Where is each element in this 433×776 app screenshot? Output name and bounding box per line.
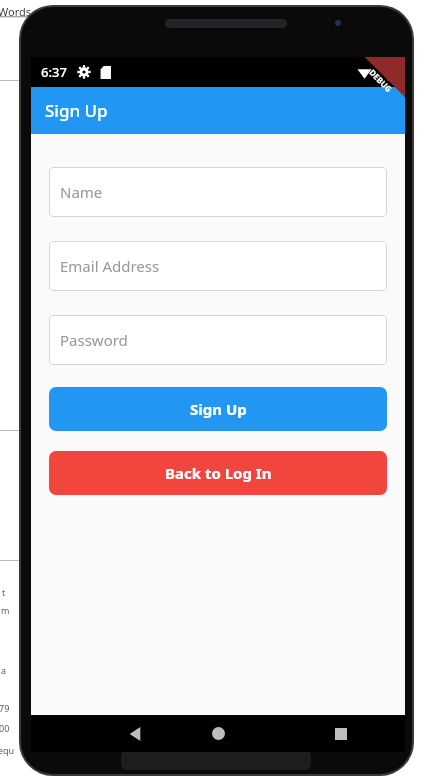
button[interactable]: Name — [49, 167, 387, 217]
staticText: Words — [0, 4, 32, 19]
staticText: a — [1, 664, 7, 676]
staticText: 00 — [0, 722, 10, 734]
button[interactable]: Home — [188, 715, 248, 752]
staticText: Back to Log In — [165, 463, 272, 483]
staticText: DEBUG — [367, 67, 395, 94]
staticText: Sign Up — [190, 399, 247, 419]
staticText: m — [1, 604, 10, 616]
button[interactable]: Back — [105, 715, 165, 752]
staticText: Password — [60, 330, 128, 350]
button[interactable]: Email Address — [49, 241, 387, 291]
staticText: 79 — [0, 702, 10, 714]
staticText: equ — [0, 744, 15, 756]
staticText: t — [2, 586, 6, 598]
button[interactable]: Password — [49, 315, 387, 365]
button[interactable]: Back to Log In — [49, 451, 387, 495]
staticText: 6:37 — [41, 63, 67, 81]
staticText: Sign Up — [45, 99, 108, 122]
button[interactable]: Sign Up — [49, 387, 387, 431]
staticText: Email Address — [60, 256, 160, 276]
staticText: Name — [60, 182, 103, 202]
button[interactable]: Recent apps — [311, 715, 371, 752]
